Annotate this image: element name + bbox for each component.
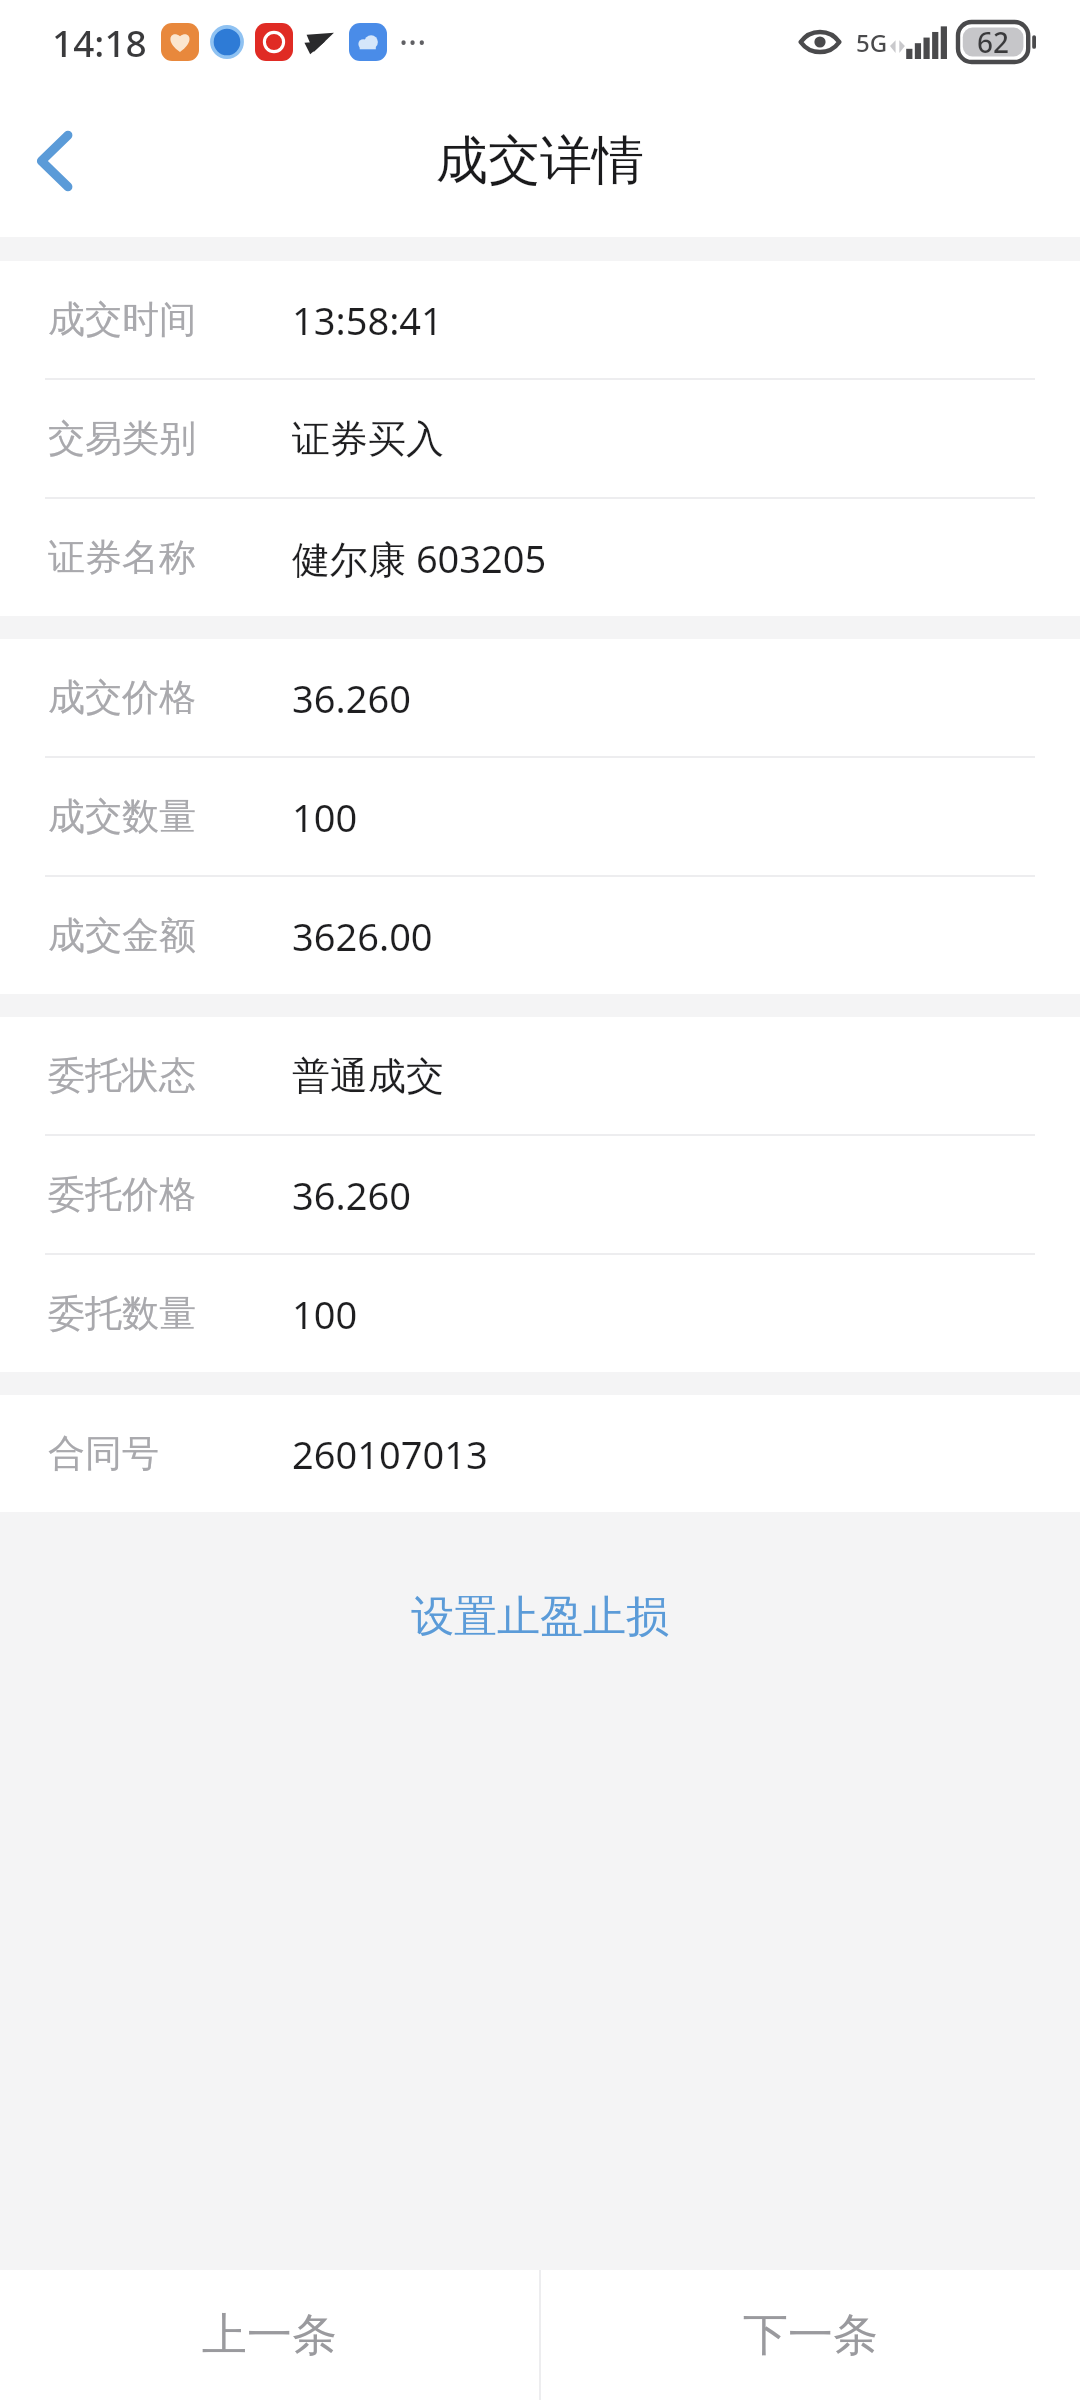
button[interactable]: 成交时间 [0, 261, 1080, 380]
button[interactable]: 合同号 [0, 1395, 1080, 1512]
staticText: 委托价格 [48, 1171, 196, 1218]
button[interactable]: 证券名称 [0, 499, 1080, 616]
staticText: 3626.00 [292, 910, 433, 962]
staticText: 成交详情 [436, 128, 644, 194]
staticText: ··· [399, 19, 427, 65]
staticText: 100 [292, 1288, 358, 1340]
staticText: 36.260 [292, 672, 411, 724]
staticText: 成交价格 [48, 674, 196, 721]
staticText: 健尔康 603205 [292, 532, 547, 584]
staticText: 委托数量 [48, 1290, 196, 1337]
button[interactable]: 成交数量 [0, 758, 1080, 877]
staticText: 14:18 [52, 17, 147, 67]
staticText: 委托状态 [48, 1052, 196, 1099]
staticText: 普通成交 [292, 1052, 444, 1100]
staticText: 成交时间 [48, 296, 196, 343]
staticText: 上一条 [202, 2307, 337, 2364]
staticText: 13:58:41 [292, 294, 443, 346]
staticText: 交易类别 [48, 415, 196, 462]
staticText: 合同号 [48, 1430, 159, 1477]
staticText: 36.260 [292, 1169, 411, 1221]
button[interactable]: 成交金额 [0, 877, 1080, 994]
staticText: 成交数量 [48, 793, 196, 840]
button[interactable]: Back [0, 106, 110, 216]
staticText: 证券名称 [48, 534, 196, 581]
button[interactable]: 下一条 [541, 2270, 1080, 2400]
staticText: 5G [856, 26, 888, 59]
staticText: 62 [977, 23, 1010, 61]
button[interactable]: 委托价格 [0, 1136, 1080, 1255]
button[interactable]: 委托数量 [0, 1255, 1080, 1372]
button[interactable]: 设置止盈止损 [387, 1580, 693, 1654]
button[interactable]: 委托状态 [0, 1017, 1080, 1136]
staticText: 成交金额 [48, 912, 196, 959]
staticText: 260107013 [292, 1428, 488, 1480]
staticText: 100 [292, 791, 358, 843]
staticText: 下一条 [743, 2307, 878, 2364]
button[interactable]: 上一条 [0, 2270, 539, 2400]
staticText: 设置止盈止损 [411, 1590, 669, 1644]
button[interactable]: 交易类别 [0, 380, 1080, 499]
button[interactable]: 成交价格 [0, 639, 1080, 758]
staticText: 证券买入 [292, 415, 444, 463]
